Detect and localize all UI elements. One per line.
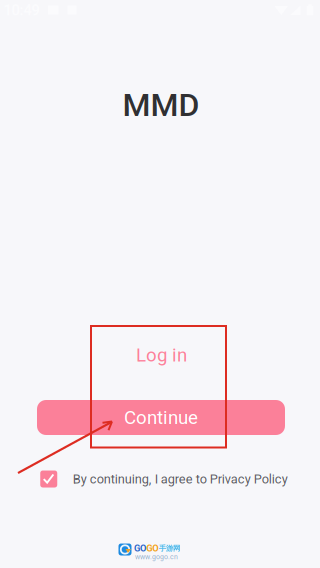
staticText: GO (134, 543, 146, 554)
staticText: 手游网 (159, 544, 180, 553)
staticText: www.gogo.cn (135, 553, 178, 561)
staticText: GO (146, 543, 158, 554)
staticText: Continue (124, 407, 198, 428)
staticText: MMD (122, 86, 199, 124)
staticText: By continuing, I agree to Privacy Policy (73, 471, 288, 486)
button[interactable]: By continuing, I agree to Privacy Policy (40, 465, 288, 493)
button[interactable]: Log in (96, 336, 226, 374)
button[interactable]: Continue (37, 400, 285, 435)
staticText: Log in (136, 344, 187, 366)
